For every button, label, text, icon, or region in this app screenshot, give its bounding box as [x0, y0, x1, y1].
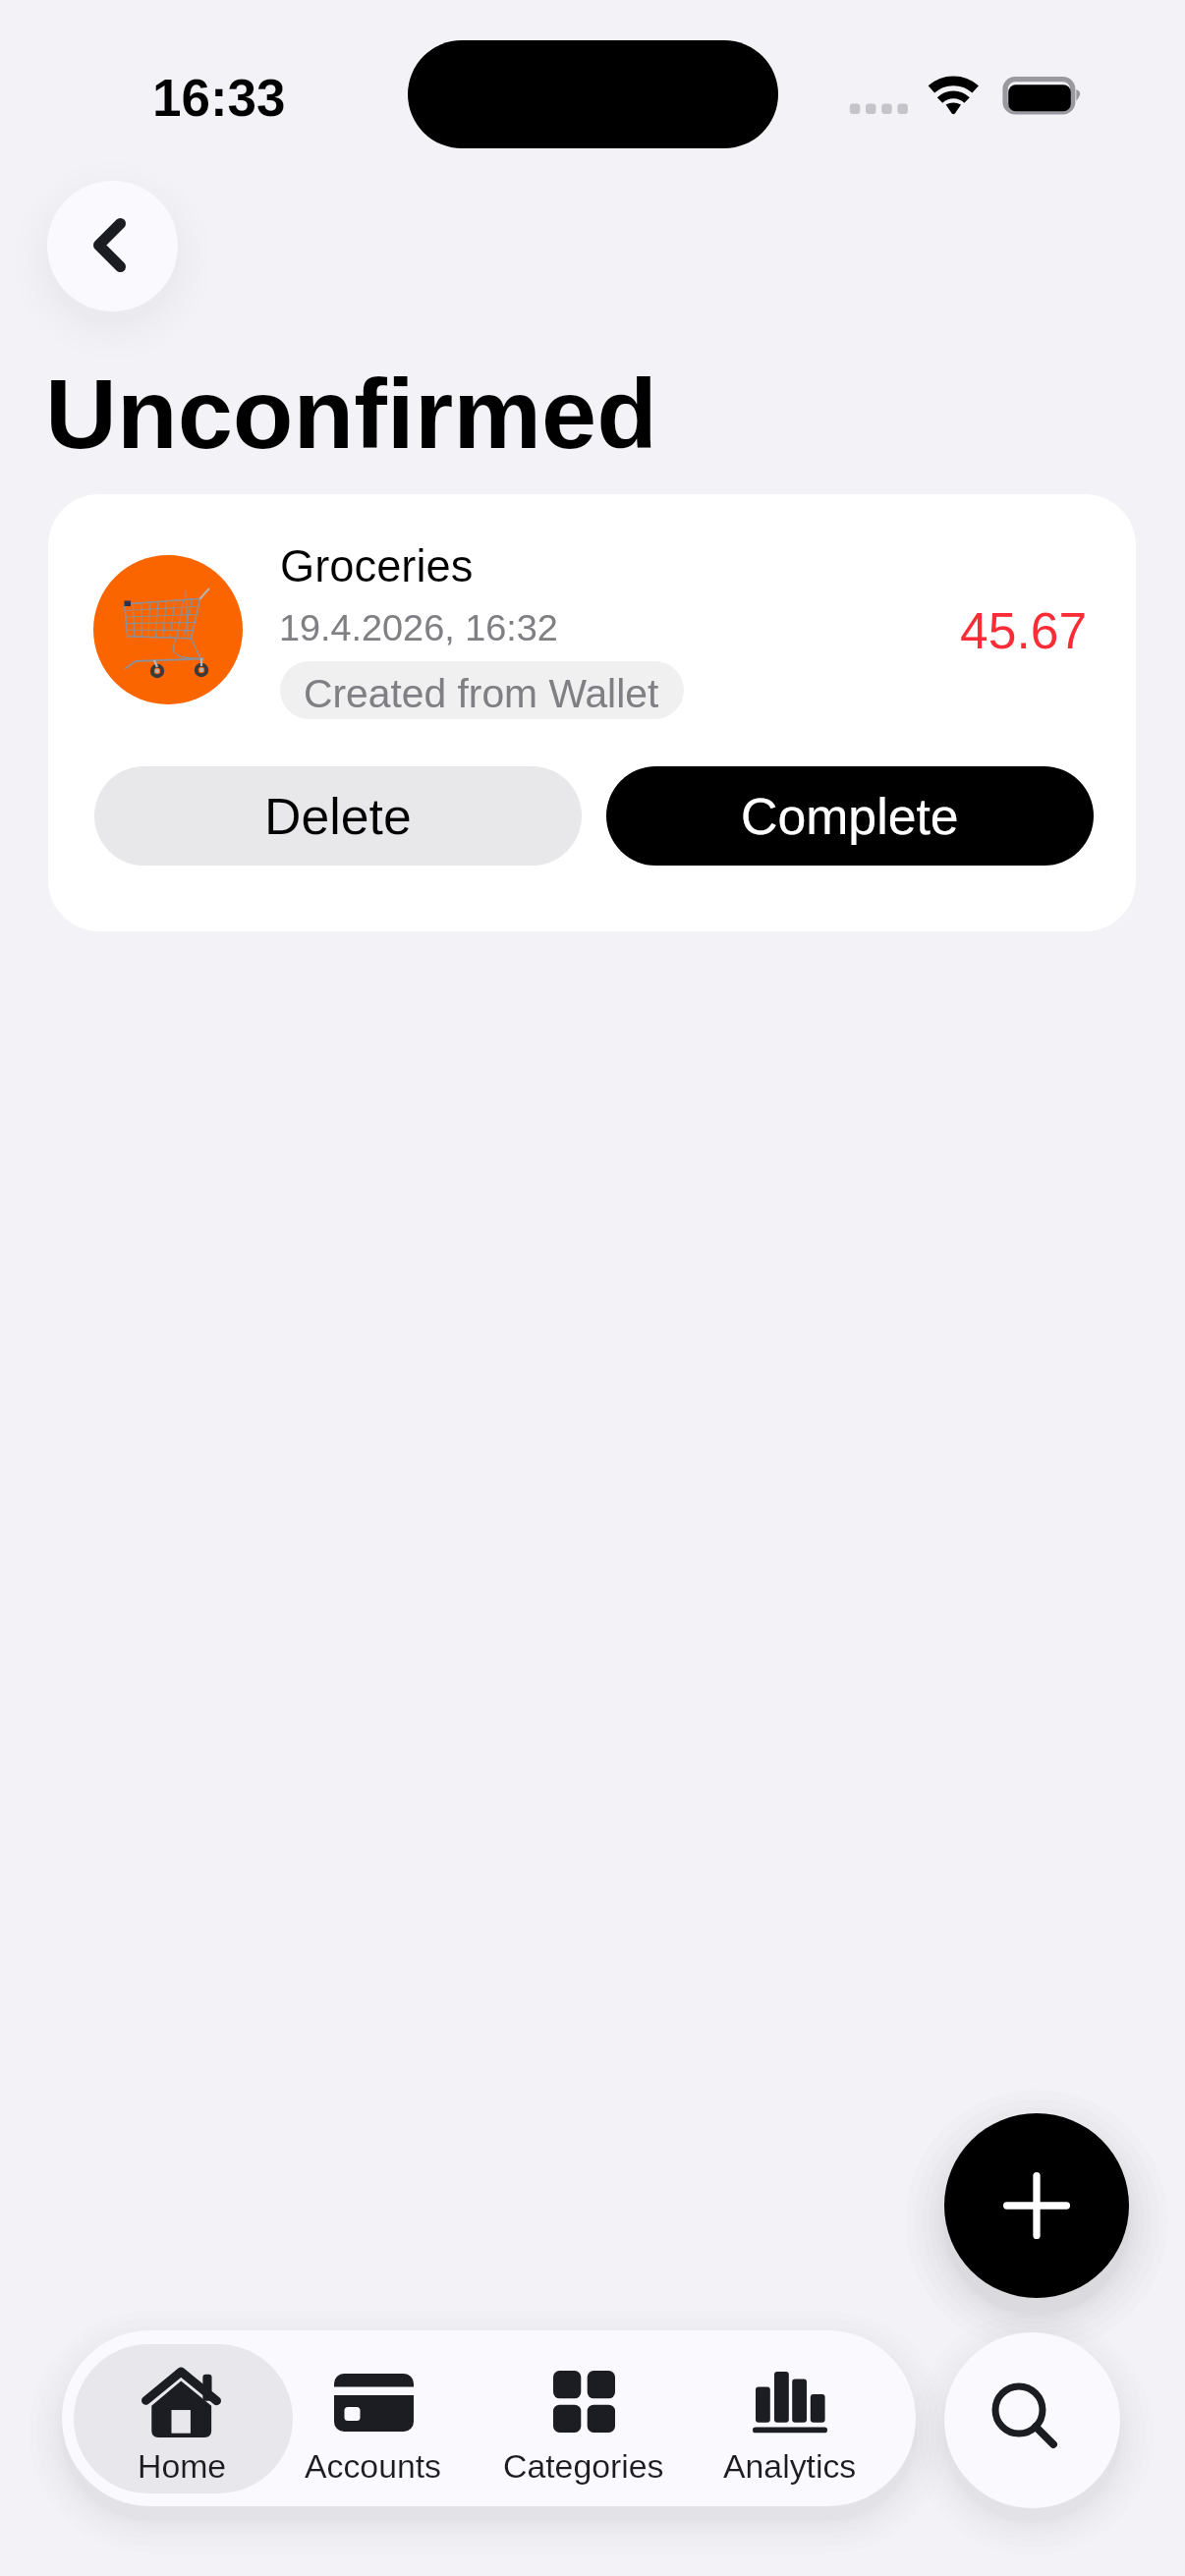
- staticText: Groceries: [280, 541, 474, 591]
- button[interactable]: [480, 2346, 687, 2493]
- staticText: 45.67: [960, 602, 1088, 659]
- button[interactable]: Add transaction: [944, 2113, 1129, 2298]
- button[interactable]: Back: [47, 181, 178, 311]
- staticText: Delete: [264, 788, 412, 845]
- staticText: 16:33: [152, 69, 286, 127]
- button[interactable]: Groceries: [48, 494, 1136, 931]
- staticText: Accounts: [305, 2447, 442, 2485]
- staticText: Complete: [741, 788, 959, 845]
- staticText: 19.4.2026, 16:32: [279, 607, 558, 648]
- button[interactable]: Search: [944, 2332, 1120, 2508]
- button[interactable]: [270, 2346, 477, 2493]
- staticText: Categories: [503, 2447, 664, 2485]
- button[interactable]: Complete: [606, 766, 1094, 866]
- staticText: Created from Wallet: [304, 671, 659, 716]
- staticText: Home: [138, 2447, 227, 2485]
- staticText: Analytics: [723, 2447, 857, 2485]
- button[interactable]: Delete: [94, 766, 582, 866]
- staticText: Unconfirmed: [45, 359, 657, 470]
- button[interactable]: [687, 2346, 893, 2493]
- button[interactable]: Home tab: [74, 2344, 293, 2493]
- button[interactable]: [79, 2346, 285, 2493]
